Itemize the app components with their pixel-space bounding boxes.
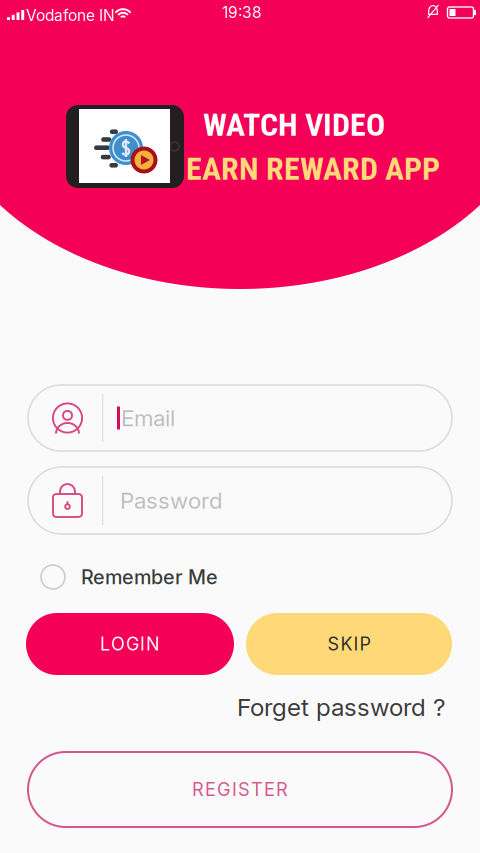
button[interactable]: REGISTER	[28, 752, 452, 827]
button[interactable]: Remember Me	[41, 555, 271, 599]
button[interactable]: LOGIN	[26, 613, 234, 675]
staticText: Remember Me	[81, 565, 218, 589]
staticText: Email	[121, 404, 175, 431]
button[interactable]: Forget password ?	[216, 690, 446, 724]
staticText: SKIP	[327, 633, 370, 655]
button[interactable]: SKIP	[246, 613, 452, 675]
staticText: 19:38	[222, 3, 262, 22]
staticText: Password	[120, 487, 223, 514]
staticText: EARN REWARD APP	[186, 150, 440, 187]
staticText: WATCH VIDEO	[203, 106, 385, 143]
staticText: REGISTER	[192, 778, 288, 800]
staticText: Vodafone IN	[26, 6, 115, 25]
staticText: Forget password ?	[237, 692, 446, 722]
staticText: LOGIN	[100, 633, 160, 655]
